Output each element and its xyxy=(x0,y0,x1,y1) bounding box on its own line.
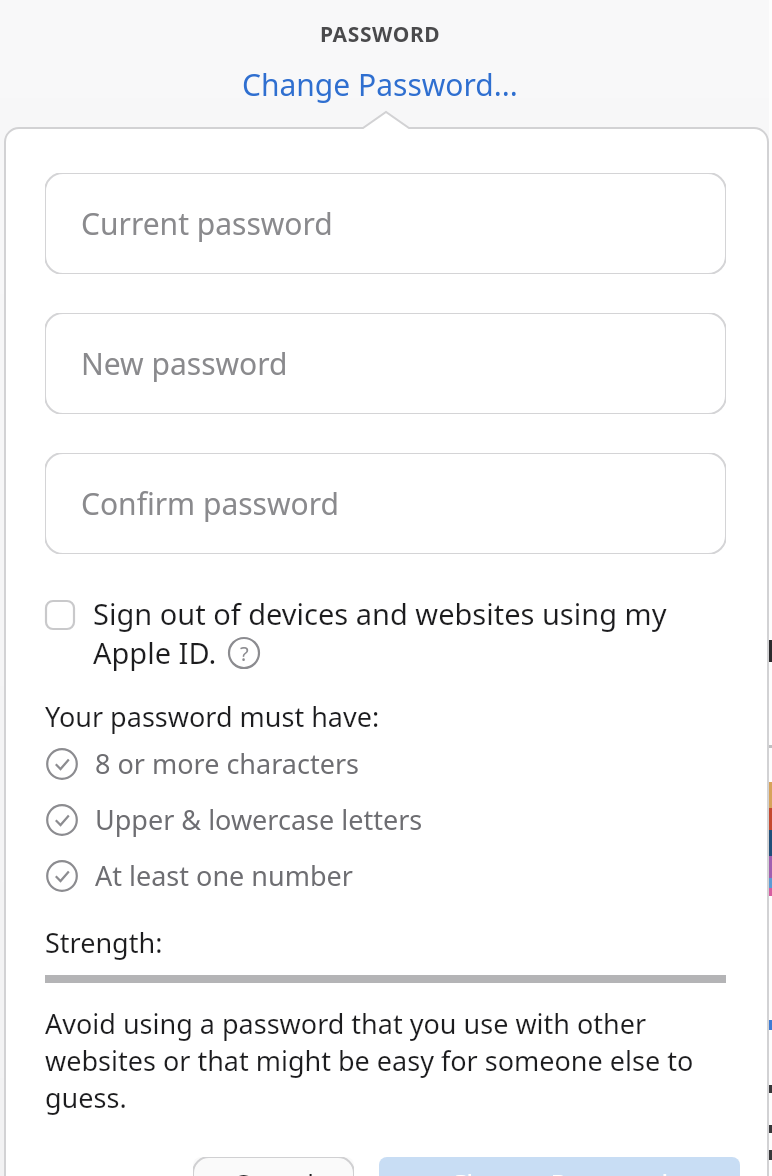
button[interactable]: Current password xyxy=(45,173,726,274)
staticText: New password xyxy=(81,343,288,384)
staticText: At least one number xyxy=(95,857,353,894)
staticText: Change Password... xyxy=(242,64,518,105)
staticText: Change Password xyxy=(450,1165,669,1176)
staticText: Apple ID. xyxy=(93,633,217,672)
staticText: Sign out of devices and websites using m… xyxy=(93,594,667,633)
staticText: ? xyxy=(240,640,249,667)
staticText: Your password must have: xyxy=(45,698,380,735)
staticText: Current password xyxy=(81,203,333,244)
staticText: PASSWORD xyxy=(320,20,441,49)
button[interactable]: Change Password xyxy=(379,1157,740,1176)
staticText: Confirm password xyxy=(81,483,339,524)
staticText: 8 or more characters xyxy=(95,745,359,782)
staticText: Avoid using a password that you use with… xyxy=(45,1005,726,1116)
staticText: Cancel xyxy=(233,1165,314,1176)
staticText: Upper & lowercase letters xyxy=(95,801,423,838)
button[interactable]: Confirm password xyxy=(45,453,726,554)
button[interactable]: Change Password... xyxy=(236,62,524,107)
button[interactable]: Help xyxy=(227,636,261,670)
button[interactable]: New password xyxy=(45,313,726,414)
button[interactable]: Sign out of devices and websites using m… xyxy=(45,594,726,672)
button[interactable]: Cancel xyxy=(193,1157,354,1176)
staticText: Strength: xyxy=(45,924,163,961)
